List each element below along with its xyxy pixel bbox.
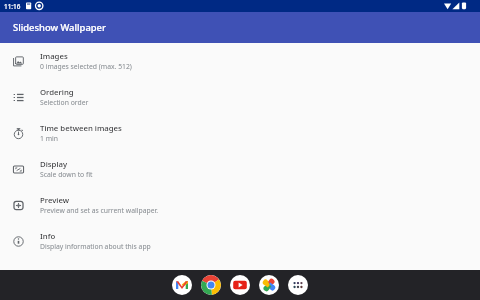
button[interactable]: Images: [0, 43, 480, 79]
staticText: Info: [40, 231, 56, 242]
button[interactable]: Gmail: [172, 275, 192, 295]
staticText: 1 min: [40, 134, 58, 143]
button[interactable]: All apps: [288, 275, 308, 295]
staticText: 11:16: [4, 2, 21, 11]
button[interactable]: Photos: [259, 275, 279, 295]
staticText: Scale down to fit: [40, 170, 93, 179]
staticText: Time between images: [40, 123, 122, 134]
staticText: Preview and set as current wallpaper.: [40, 206, 159, 215]
button[interactable]: Chrome: [201, 275, 221, 295]
staticText: Preview: [40, 195, 70, 206]
staticText: Display information about this app: [40, 242, 151, 251]
staticText: Images: [40, 51, 68, 62]
staticText: 0 images selected (max. 512): [40, 62, 132, 71]
staticText: Slideshow Wallpaper: [13, 21, 106, 34]
button[interactable]: Preview: [0, 187, 480, 223]
button[interactable]: Display: [0, 151, 480, 187]
button[interactable]: Time between images: [0, 115, 480, 151]
staticText: Selection order: [40, 98, 89, 107]
button[interactable]: Info: [0, 223, 480, 259]
button[interactable]: Ordering: [0, 79, 480, 115]
staticText: Display: [40, 159, 68, 170]
staticText: Ordering: [40, 87, 74, 98]
button[interactable]: YouTube: [230, 275, 250, 295]
